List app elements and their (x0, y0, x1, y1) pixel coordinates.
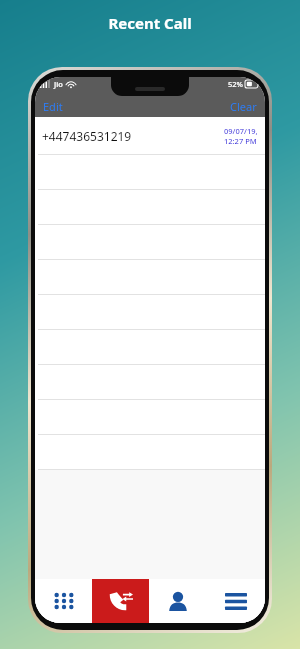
staticText: Edit (43, 99, 63, 114)
button[interactable]: More (207, 579, 265, 623)
button[interactable]: Call log (92, 579, 149, 623)
button[interactable]: +447436531219 (35, 117, 265, 155)
staticText: 12:27 PM (224, 136, 257, 146)
staticText: Jio (54, 79, 63, 89)
staticText: 52% (228, 79, 243, 89)
button[interactable]: Edit (35, 95, 71, 117)
staticText: Clear (230, 99, 257, 114)
staticText: 09/07/19, (224, 126, 258, 136)
staticText: +447436531219 (42, 128, 132, 144)
button[interactable]: Contacts (149, 579, 207, 623)
button[interactable]: Dialpad (35, 579, 92, 623)
button[interactable]: Clear (222, 95, 265, 117)
staticText: Recent Call (108, 13, 192, 33)
